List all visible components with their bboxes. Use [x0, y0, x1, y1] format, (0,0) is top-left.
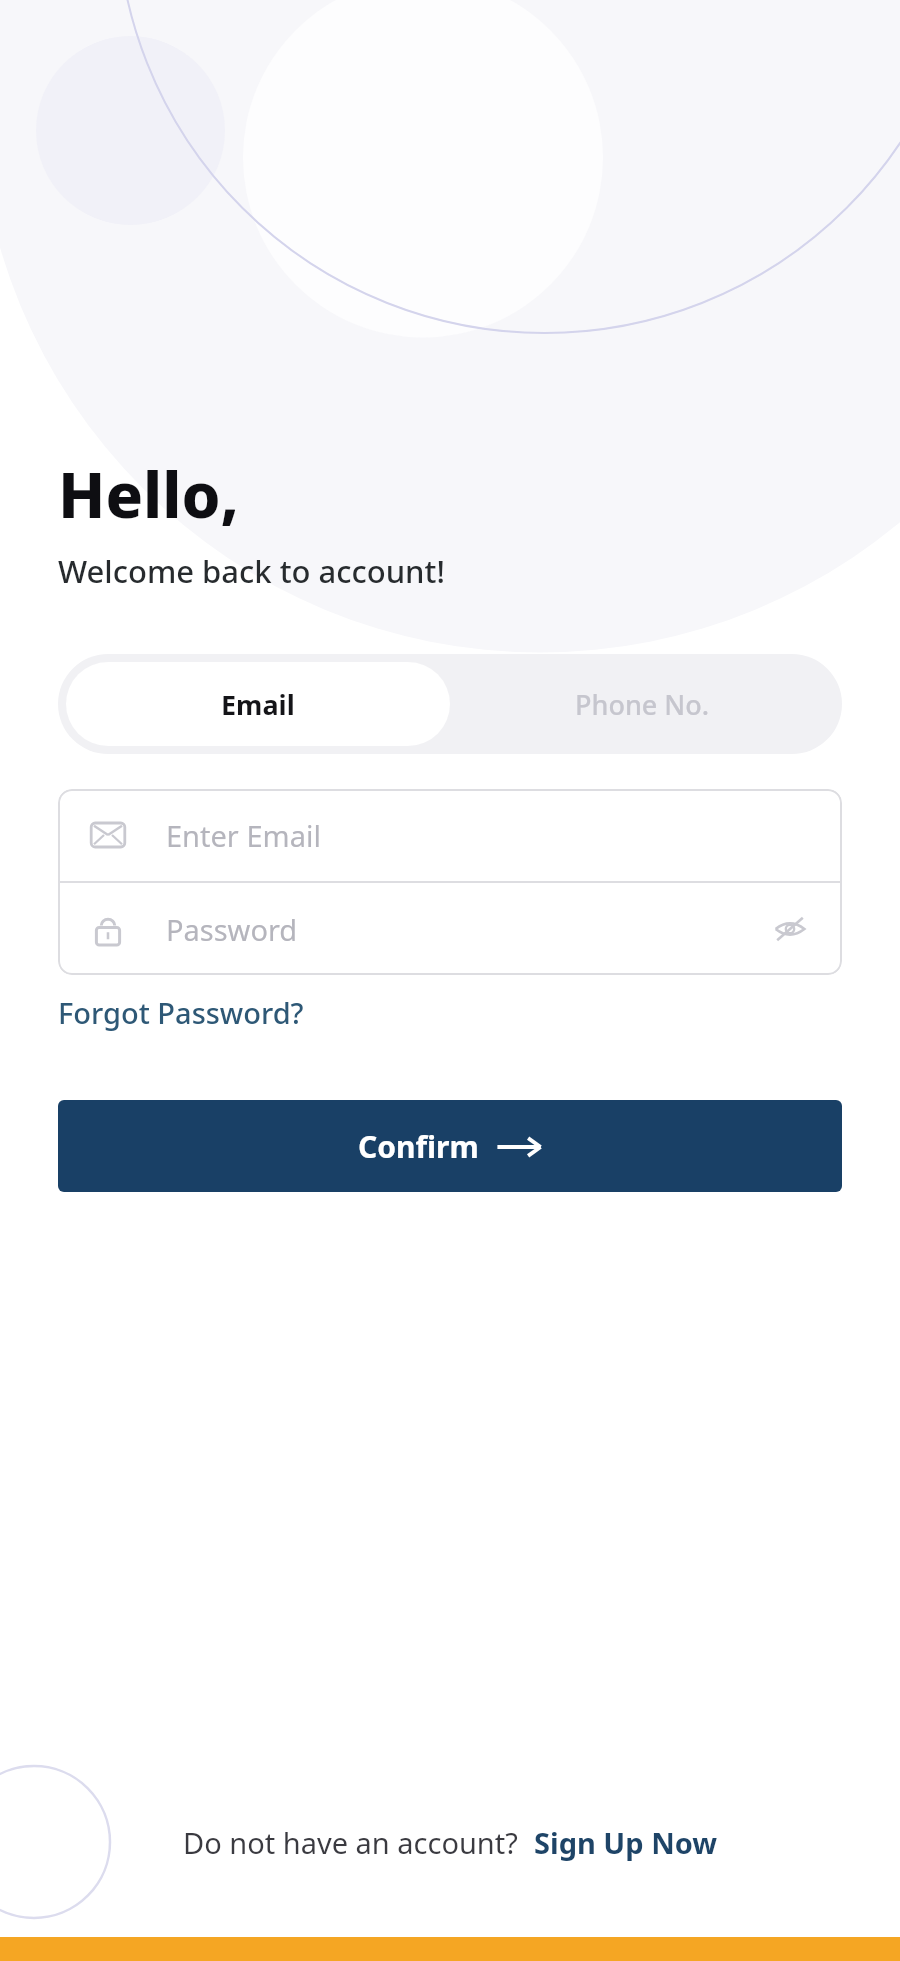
button[interactable]: Do not have an account?: [183, 1823, 718, 1862]
button[interactable]: Password: [58, 883, 842, 975]
button[interactable]: Enter Email: [58, 789, 842, 881]
staticText: Confirm: [358, 1126, 479, 1167]
staticText: Phone No.: [575, 686, 710, 723]
staticText: Forgot Password?: [58, 993, 304, 1032]
button[interactable]: Confirm: [58, 1100, 842, 1192]
button[interactable]: Show password: [768, 907, 812, 951]
button[interactable]: Email: [66, 662, 450, 746]
staticText: Do not have an account?: [183, 1823, 518, 1862]
staticText: Enter Email: [166, 816, 321, 855]
staticText: Hello,: [58, 452, 239, 536]
staticText: Password: [166, 910, 298, 949]
button[interactable]: Phone No.: [450, 662, 834, 746]
staticText: Sign Up Now: [534, 1823, 718, 1862]
staticText: Welcome back to account!: [58, 550, 445, 592]
staticText: Email: [221, 686, 295, 723]
button[interactable]: Forgot Password?: [58, 993, 304, 1032]
